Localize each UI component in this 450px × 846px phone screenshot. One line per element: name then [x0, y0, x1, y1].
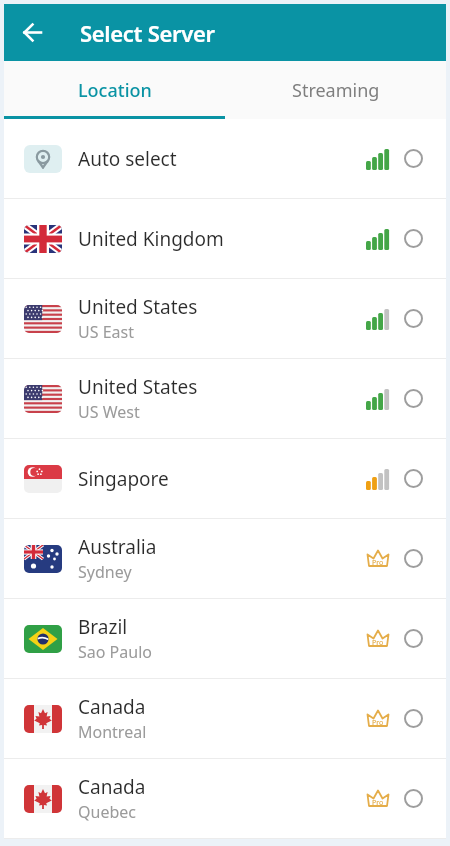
- staticText: Pro: [372, 798, 384, 808]
- staticText: Australia: [78, 534, 157, 560]
- staticText: US East: [78, 321, 134, 343]
- staticText: United States: [78, 374, 198, 400]
- button[interactable]: United States: [4, 279, 446, 358]
- staticText: US West: [78, 401, 140, 423]
- staticText: Pro: [372, 558, 384, 568]
- staticText: Singapore: [78, 466, 169, 492]
- button[interactable]: Brazil: [4, 599, 446, 678]
- button[interactable]: Australia: [4, 519, 446, 598]
- staticText: Canada: [78, 694, 146, 720]
- staticText: Quebec: [78, 801, 136, 823]
- staticText: Pro: [372, 638, 384, 648]
- button[interactable]: United Kingdom: [4, 199, 446, 278]
- button[interactable]: United States: [4, 359, 446, 438]
- button[interactable]: Streaming: [225, 61, 446, 119]
- staticText: Streaming: [292, 78, 380, 103]
- staticText: Montreal: [78, 721, 147, 743]
- staticText: Pro: [372, 718, 384, 728]
- button[interactable]: Canada: [4, 759, 446, 838]
- staticText: United Kingdom: [78, 226, 224, 252]
- staticText: United States: [78, 294, 198, 320]
- staticText: Canada: [78, 774, 146, 800]
- staticText: Sao Paulo: [78, 641, 152, 663]
- staticText: Location: [78, 78, 152, 103]
- button[interactable]: Singapore: [4, 439, 446, 518]
- staticText: Brazil: [78, 614, 128, 640]
- button[interactable]: Location: [4, 61, 225, 119]
- button[interactable]: Canada: [4, 679, 446, 758]
- staticText: Auto select: [78, 146, 177, 172]
- staticText: Sydney: [78, 561, 132, 583]
- button[interactable]: [4, 4, 61, 61]
- staticText: Select Server: [80, 18, 215, 48]
- button[interactable]: Auto select: [4, 119, 446, 198]
